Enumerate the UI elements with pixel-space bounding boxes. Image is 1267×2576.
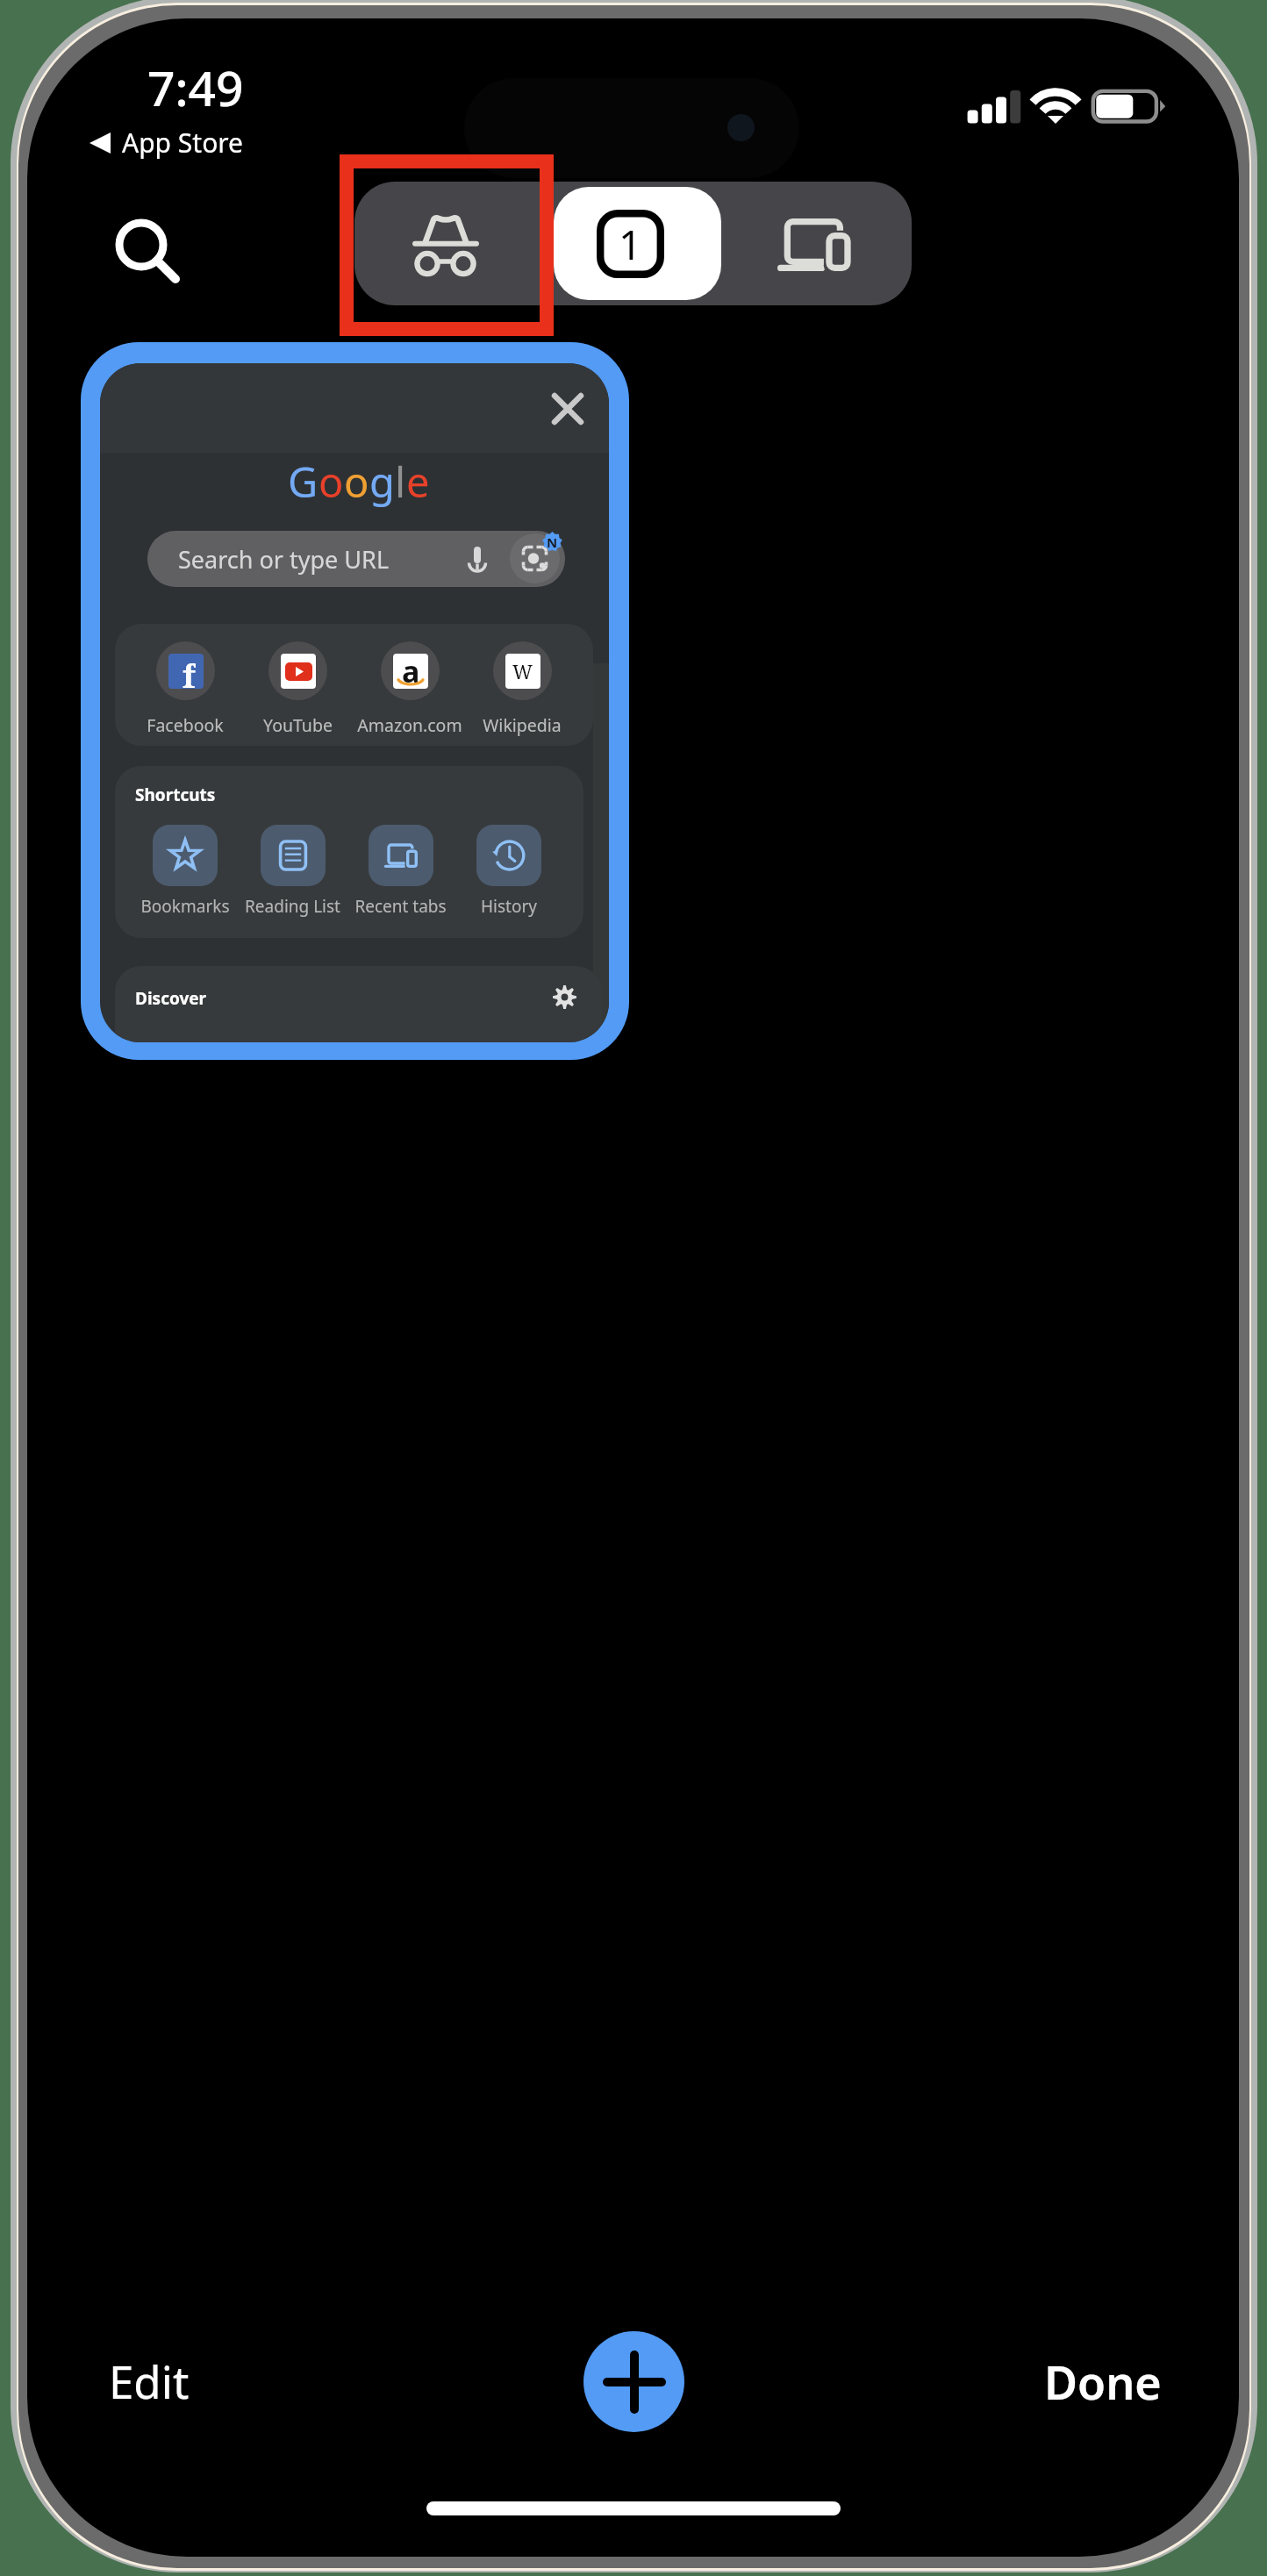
button[interactable]: a [354, 641, 466, 737]
button[interactable]: Close tab [536, 377, 599, 440]
button[interactable]: Tabs from other devices [721, 182, 912, 305]
button[interactable]: Search with camera [510, 533, 560, 583]
staticText: Amazon.com [357, 713, 462, 737]
button[interactable]: 1 open tab [554, 187, 721, 300]
button[interactable]: W [466, 641, 578, 737]
staticText: 1 [619, 217, 642, 272]
staticText: Facebook [147, 713, 224, 737]
button[interactable]: Bookmarks [131, 825, 239, 918]
button[interactable]: f [129, 641, 241, 737]
button[interactable]: Done [1044, 2351, 1162, 2413]
staticText: Search or type URL [178, 543, 390, 576]
button[interactable]: Incognito tabs [354, 182, 554, 305]
staticText: W [512, 658, 533, 684]
staticText: Discover [135, 987, 207, 1010]
staticText: N [547, 533, 558, 551]
staticText: Edit [109, 2351, 190, 2411]
staticText: o [344, 454, 369, 510]
staticText: G [288, 454, 319, 510]
button[interactable]: Search or type URL [147, 531, 565, 587]
button[interactable]: Customize Discover [547, 979, 583, 1015]
staticText: History [481, 895, 537, 918]
staticText: a [402, 654, 420, 686]
button[interactable]: Discover [115, 966, 602, 1042]
staticText: Bookmarks [140, 895, 230, 918]
staticText: Wikipedia [483, 713, 562, 737]
button[interactable]: History [455, 825, 562, 918]
button[interactable]: Search tabs [95, 198, 188, 291]
button[interactable]: Recent tabs [347, 825, 455, 918]
staticText: App Store [122, 125, 244, 161]
staticText: YouTube [263, 713, 333, 737]
staticText: f [183, 655, 196, 689]
button[interactable]: Reading List [239, 825, 347, 918]
staticText: 7:49 [147, 54, 244, 120]
button[interactable]: YouTube [241, 641, 354, 737]
staticText: Reading List [245, 895, 340, 918]
staticText: e [406, 454, 430, 510]
staticText: g [369, 454, 395, 510]
staticText: l [395, 454, 406, 510]
button[interactable]: Edit [109, 2351, 190, 2411]
staticText: Shortcuts [135, 784, 216, 806]
button[interactable]: Close tab [100, 363, 609, 1042]
staticText: Done [1044, 2351, 1162, 2413]
staticText: Recent tabs [354, 895, 447, 918]
button[interactable]: New tab [583, 2331, 684, 2432]
staticText: o [319, 454, 344, 510]
